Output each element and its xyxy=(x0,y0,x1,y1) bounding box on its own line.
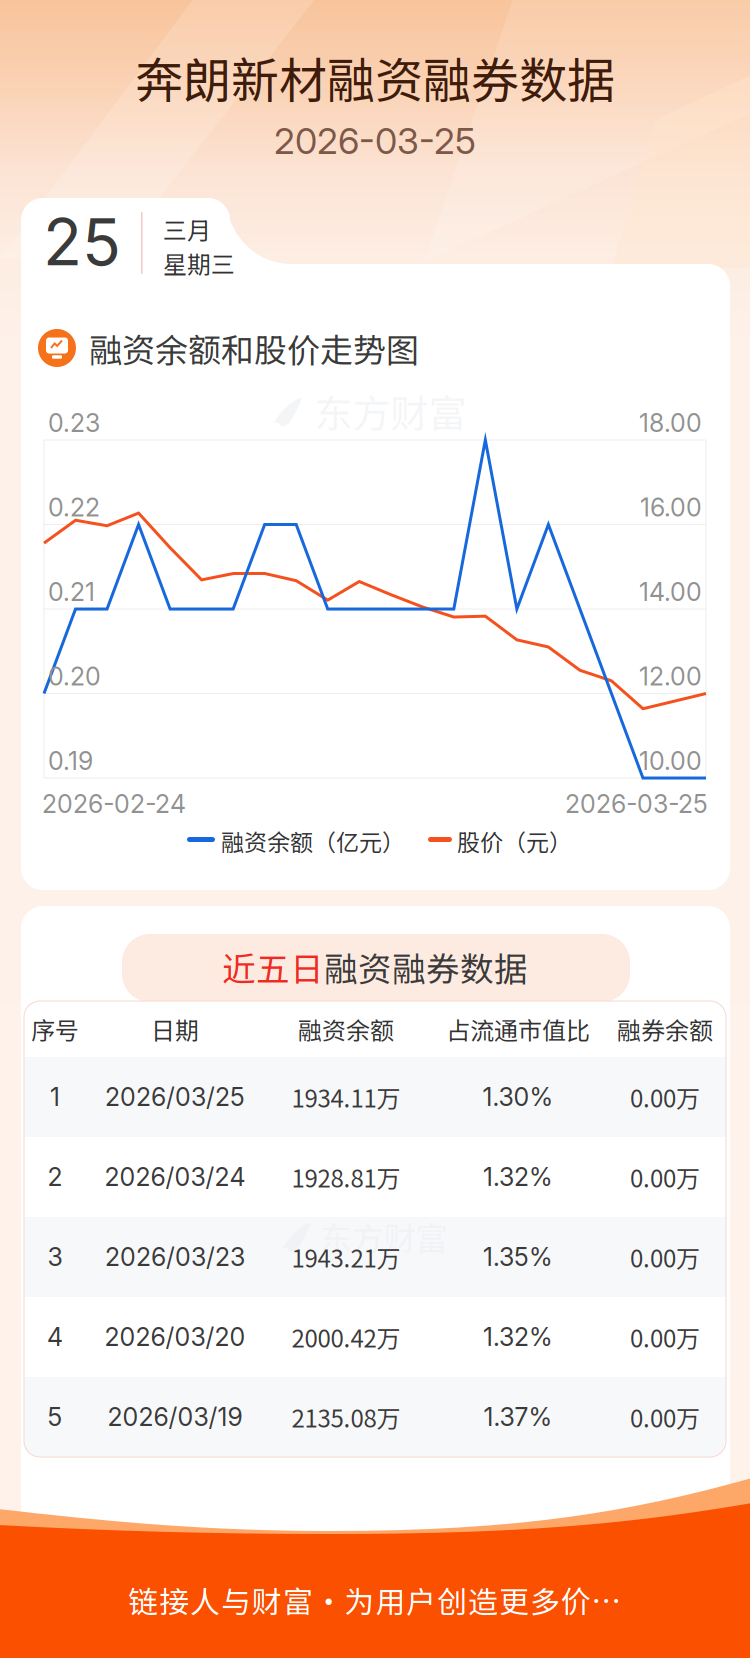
staticText: 1.37% xyxy=(483,1402,552,1432)
staticText: 2026/03/20 xyxy=(104,1322,245,1352)
staticText: 4 xyxy=(47,1322,63,1352)
staticText: 14.00 xyxy=(639,577,702,607)
staticText: 0.00万 xyxy=(630,1240,700,1274)
staticText: 融资余额（亿元） xyxy=(221,824,405,858)
staticText: 东方财富 xyxy=(314,383,466,438)
staticText: 2 xyxy=(47,1162,62,1192)
staticText: 2135.08万 xyxy=(291,1400,400,1434)
staticText: 链接人与财富·为用户创造更多价值 xyxy=(128,1578,622,1622)
staticText: 3 xyxy=(47,1242,62,1272)
staticText: 1.32% xyxy=(483,1162,553,1192)
staticText: 25 xyxy=(43,203,121,281)
staticText: 2026/03/23 xyxy=(105,1242,245,1272)
staticText: 股价（元） xyxy=(457,824,572,858)
staticText: 1.30% xyxy=(482,1082,553,1112)
staticText: 三月 xyxy=(163,212,211,246)
staticText: 16.00 xyxy=(640,492,702,523)
staticText: 1934.11万 xyxy=(291,1080,400,1114)
staticText: 0.21 xyxy=(48,577,95,607)
staticText: 日期 xyxy=(151,1012,199,1046)
staticText: 2026-03-25 xyxy=(274,119,476,163)
staticText: 0.22 xyxy=(48,492,100,523)
staticText: 1.32% xyxy=(483,1322,553,1352)
staticText: 0.00万 xyxy=(630,1160,700,1194)
staticText: 10.00 xyxy=(639,746,702,776)
staticText: 融资余额 xyxy=(298,1012,394,1046)
staticText: 序号 xyxy=(31,1012,79,1046)
staticText: 2026-02-24 xyxy=(42,789,186,819)
staticText: 0.00万 xyxy=(630,1080,700,1114)
staticText: 5 xyxy=(47,1402,62,1432)
staticText: 0.00万 xyxy=(630,1400,700,1434)
staticText: 奔朗新材融资融券数据 xyxy=(135,42,615,112)
staticText: 0.23 xyxy=(48,408,100,438)
staticText: 2000.42万 xyxy=(291,1320,400,1354)
staticText: 2026/03/25 xyxy=(105,1082,245,1112)
staticText: 融资融券数据 xyxy=(324,943,528,991)
staticText: 融券余额 xyxy=(617,1012,713,1046)
staticText: 东方财富 xyxy=(319,1213,447,1260)
staticText: 1943.21万 xyxy=(291,1240,400,1274)
staticText: 18.00 xyxy=(639,408,702,438)
staticText: 0.19 xyxy=(48,746,93,776)
staticText: 2026/03/19 xyxy=(107,1402,242,1432)
staticText: 1 xyxy=(50,1082,60,1112)
staticText: 1928.81万 xyxy=(291,1160,400,1194)
staticText: 2026/03/24 xyxy=(104,1162,245,1192)
staticText: 占流通市值比 xyxy=(446,1012,590,1046)
staticText: 2026-03-25 xyxy=(565,789,708,819)
staticText: 1.35% xyxy=(483,1242,553,1272)
staticText: 12.00 xyxy=(639,661,702,692)
staticText: 0.00万 xyxy=(630,1320,700,1354)
staticText: 融资余额和股价走势图 xyxy=(89,324,419,372)
staticText: 近五日 xyxy=(222,943,324,991)
staticText: 星期三 xyxy=(163,246,235,280)
staticText: 0.20 xyxy=(48,661,101,692)
